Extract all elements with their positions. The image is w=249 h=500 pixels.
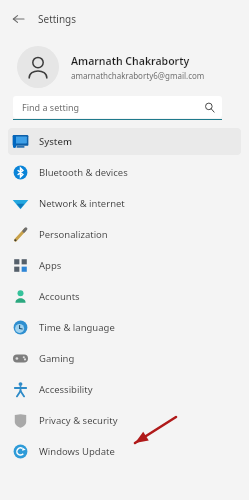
button[interactable]: System [8, 128, 241, 155]
staticText: Accessibility [39, 383, 93, 396]
staticText: Amarnath Chakraborty [71, 54, 190, 68]
staticText: Settings [38, 12, 77, 26]
button[interactable]: Personalization [8, 221, 241, 248]
staticText: amarnathchakraborty6@gmail.com [71, 70, 205, 81]
staticText: Apps [39, 259, 62, 272]
staticText: Bluetooth & devices [39, 166, 128, 179]
button[interactable]: Apps [8, 252, 241, 279]
staticText: Privacy & security [39, 414, 118, 427]
button[interactable]: Privacy & security [8, 407, 241, 434]
staticText: Windows Update [39, 445, 115, 458]
button[interactable]: Windows Update [8, 438, 241, 465]
staticText: Network & internet [39, 197, 125, 210]
button[interactable]: Network & internet [8, 190, 241, 217]
button[interactable]: Find a setting [13, 96, 222, 118]
button[interactable]: Accounts [8, 283, 241, 310]
staticText: Accounts [39, 290, 80, 303]
button[interactable]: Gaming [8, 345, 241, 372]
staticText: System [39, 135, 72, 148]
staticText: Time & language [39, 321, 115, 334]
button[interactable]: Amarnath Chakraborty [0, 38, 249, 96]
button[interactable]: Accessibility [8, 376, 241, 403]
staticText: Find a setting [22, 101, 80, 113]
button[interactable]: Time & language [8, 314, 241, 341]
button[interactable]: Back [8, 9, 28, 29]
staticText: Personalization [39, 228, 108, 241]
staticText: Gaming [39, 352, 75, 365]
button[interactable]: Bluetooth & devices [8, 159, 241, 186]
